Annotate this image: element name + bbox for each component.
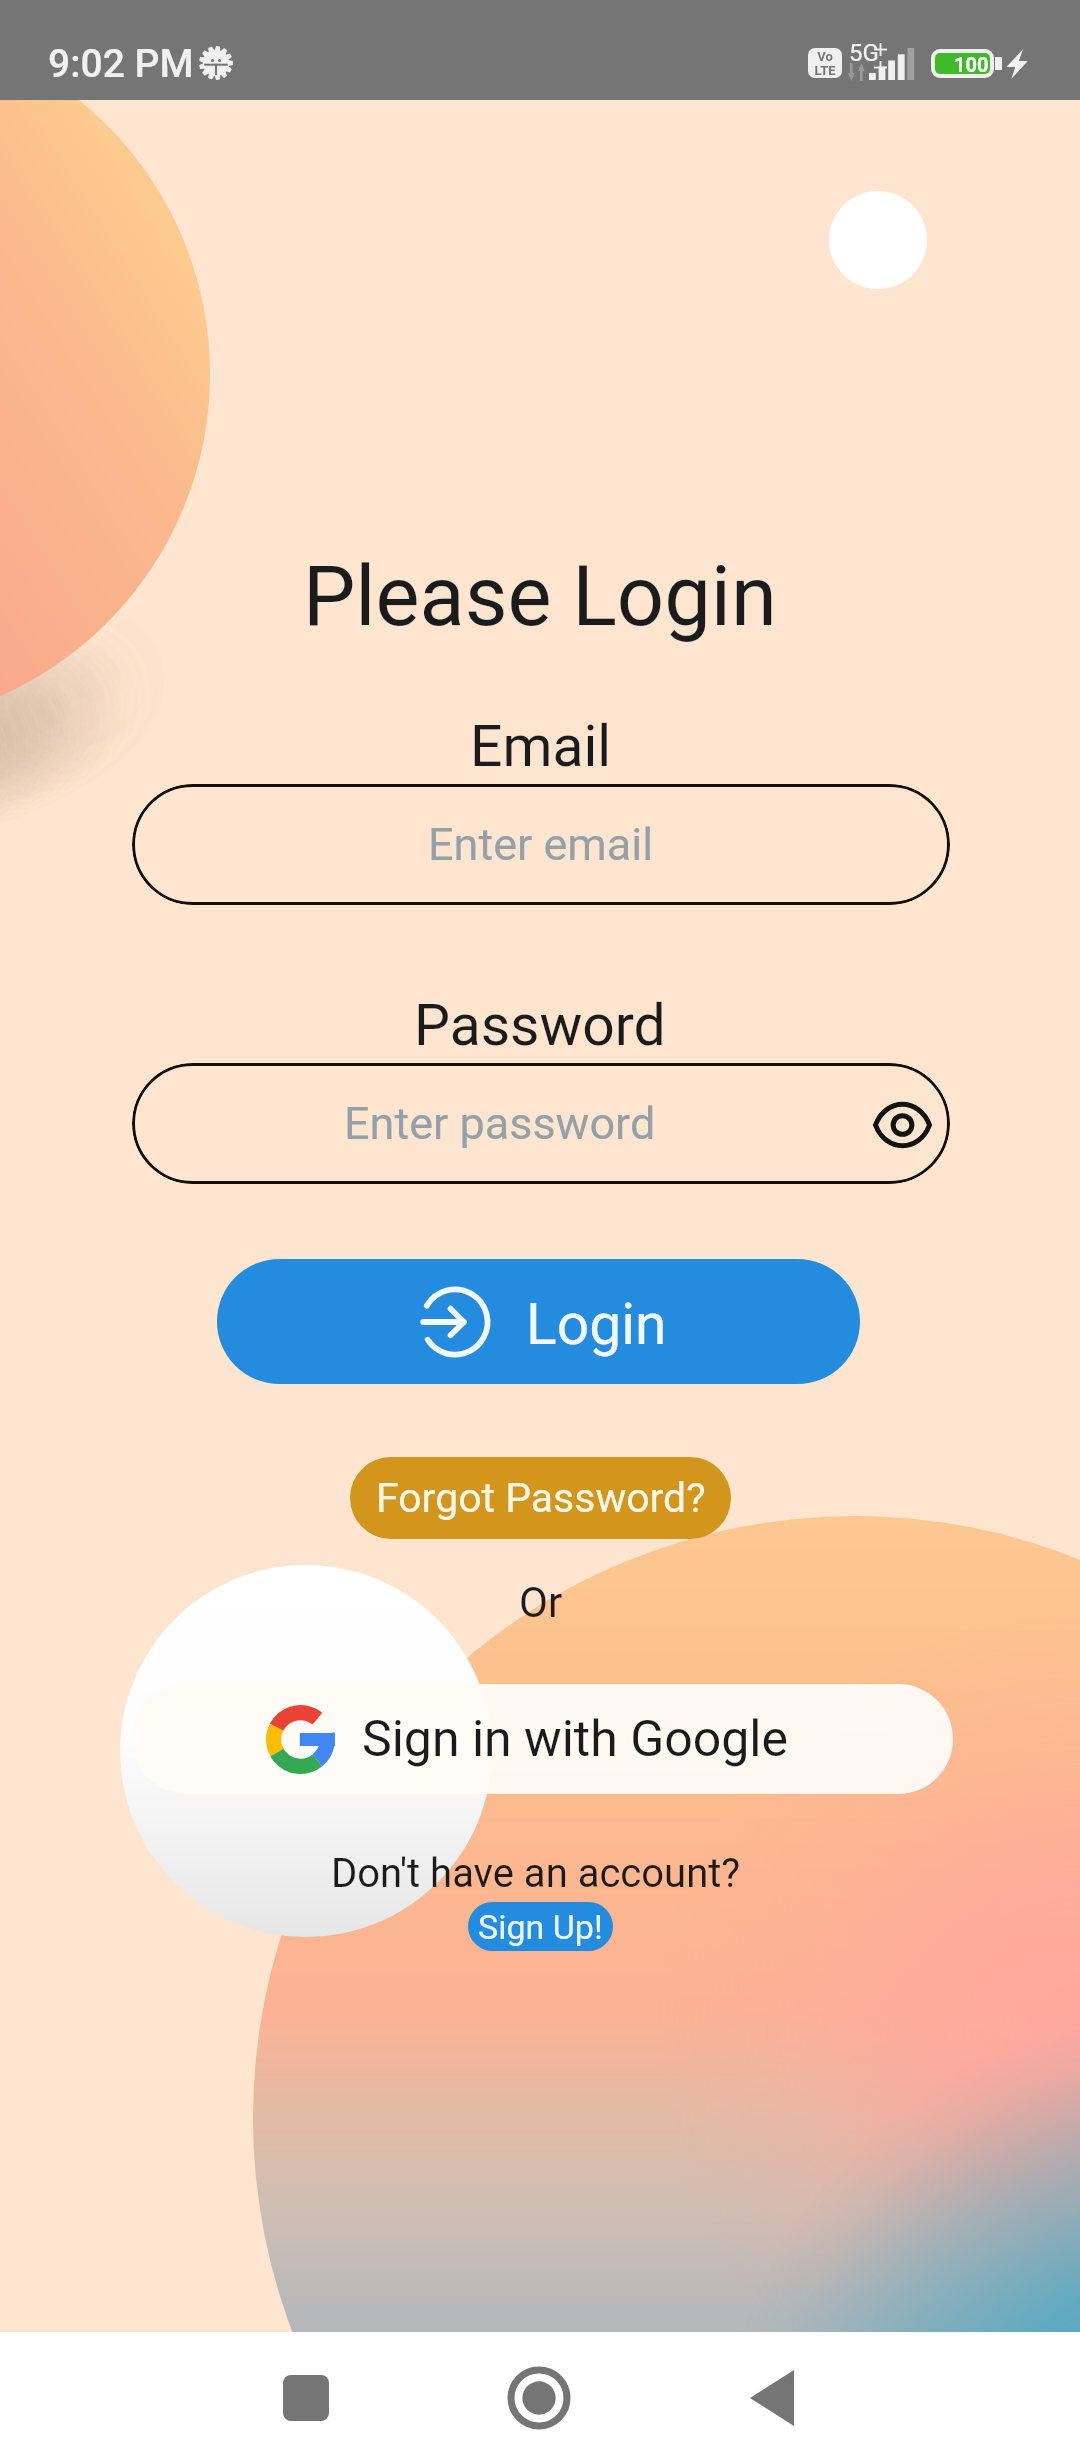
button[interactable]: Home (479, 2338, 599, 2458)
staticText: Login (526, 1291, 667, 1358)
button[interactable]: Sign Up! (468, 1902, 613, 1951)
staticText: Password (414, 992, 666, 1059)
staticText: Please Login (303, 548, 777, 645)
staticText: Email (470, 713, 612, 780)
staticText: Enter password (344, 1097, 656, 1150)
button[interactable]: Forgot Password? (350, 1457, 731, 1539)
staticText: Forgot Password? (376, 1474, 706, 1522)
button[interactable]: Show password (862, 1085, 942, 1165)
button[interactable]: Login (217, 1259, 860, 1384)
staticText: 9:02 PM (48, 41, 194, 87)
staticText: Don't have an account? (331, 1850, 741, 1897)
staticText: Enter email (428, 818, 654, 871)
staticText: Or (519, 1578, 563, 1627)
button[interactable]: Sign in with Google (132, 1684, 953, 1794)
staticText: Vo LTE (814, 49, 836, 78)
button[interactable]: Back (712, 2338, 832, 2458)
staticText: 5G (849, 39, 879, 67)
button[interactable]: Enter password (132, 1063, 950, 1184)
staticText: 100 (954, 53, 989, 74)
staticText: Sign in with Google (362, 1710, 788, 1769)
button[interactable]: Recent apps (246, 2338, 366, 2458)
staticText: Sign Up! (478, 1907, 603, 1947)
button[interactable]: Enter email (132, 784, 950, 905)
